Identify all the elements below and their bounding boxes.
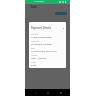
staticText: 11:20 AM [34, 0, 44, 3]
staticText: Reference [31, 40, 39, 42]
button[interactable]: Home [45, 90, 50, 95]
staticText: Payment Details [31, 26, 52, 30]
staticText: 12 Feb 2024, 09:41 AM [31, 49, 57, 52]
staticText: Info [31, 5, 37, 9]
staticText: Status [31, 61, 36, 63]
staticText: Amount [31, 54, 38, 56]
button[interactable]: Recents [58, 90, 63, 95]
staticText: Date [31, 47, 35, 49]
staticText: USD 1,248.00 [31, 56, 46, 59]
button[interactable]: Action [55, 12, 67, 15]
button[interactable]: Back [33, 90, 38, 95]
staticText: TX-8820-4413-9901 [31, 42, 53, 45]
staticText: Merchant [31, 33, 39, 35]
staticText: Acme Corporation [31, 35, 52, 38]
staticText: Paid [31, 63, 36, 66]
